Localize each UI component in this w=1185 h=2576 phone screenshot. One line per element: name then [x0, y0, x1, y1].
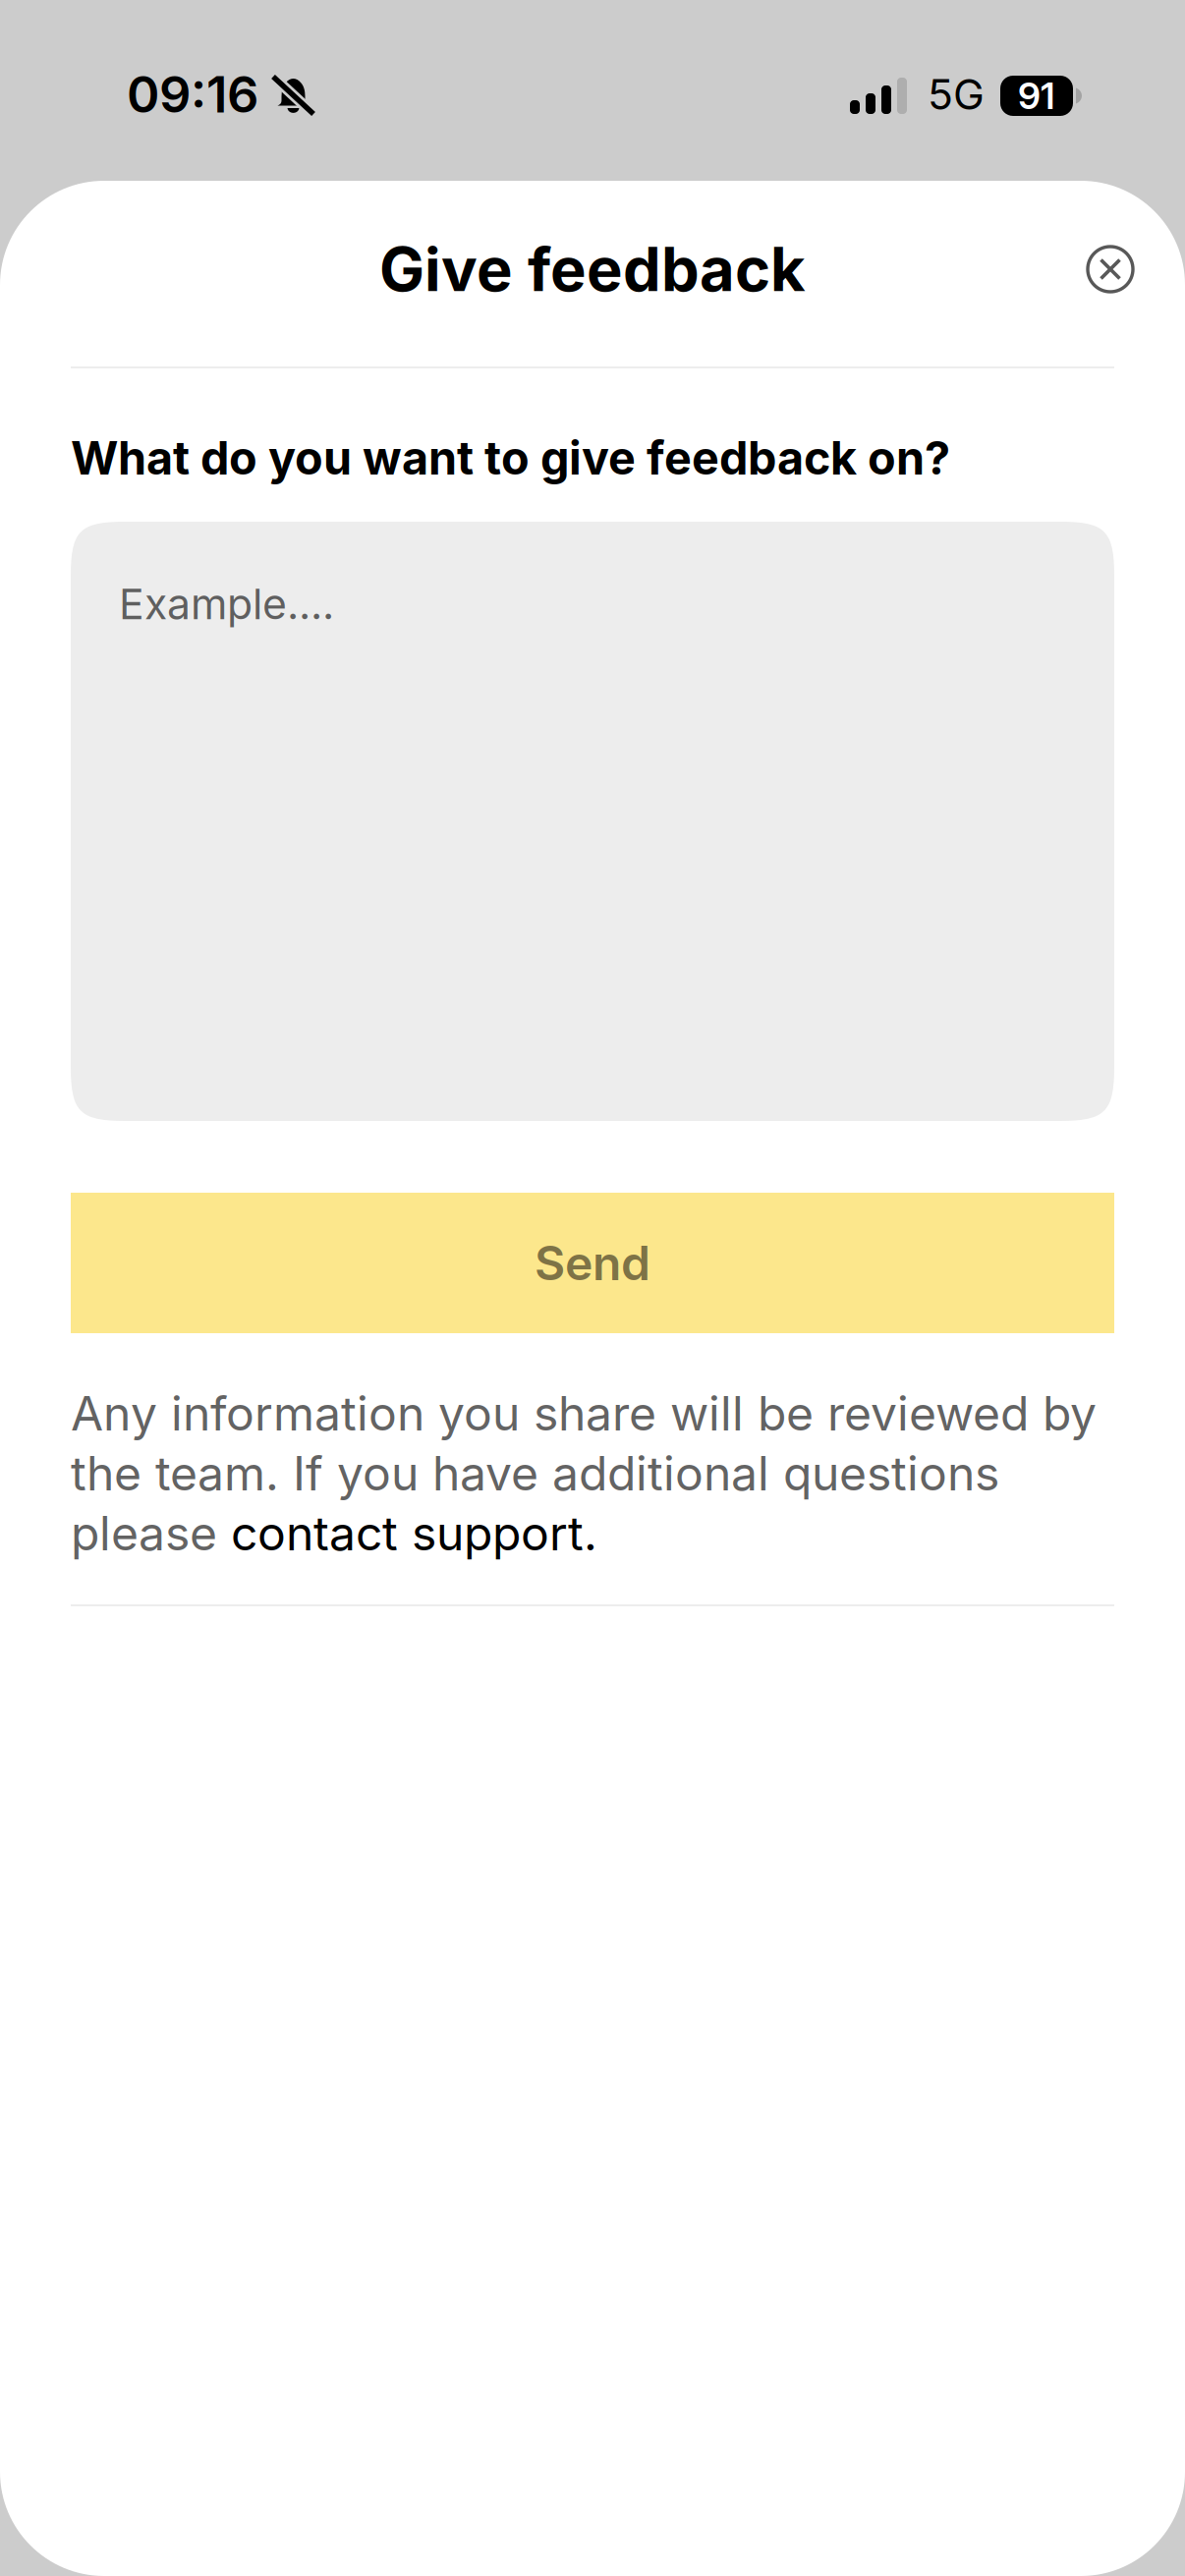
staticText: What do you want to give feedback on?	[71, 430, 950, 486]
staticText: Send	[535, 1234, 650, 1292]
staticText: please	[71, 1505, 231, 1562]
staticText: Give feedback	[379, 233, 806, 306]
staticText: .	[584, 1505, 597, 1562]
button[interactable]: Close	[1063, 222, 1157, 316]
staticText: the team. If you have additional questio…	[71, 1445, 999, 1502]
staticText: contact support	[231, 1505, 584, 1562]
staticText: 91	[1018, 74, 1055, 118]
button[interactable]: contact support	[231, 1505, 584, 1562]
button[interactable]: Example....	[71, 522, 1114, 1121]
staticText: Example....	[119, 579, 334, 629]
staticText: Any information you share will be review…	[71, 1385, 1097, 1442]
staticText: 5G	[928, 69, 985, 120]
button[interactable]: Send	[71, 1193, 1114, 1333]
staticText: 09:16	[127, 64, 258, 124]
